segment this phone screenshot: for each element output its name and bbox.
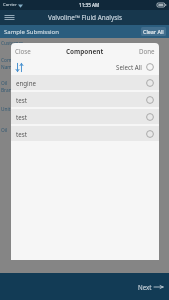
staticText: test — [16, 96, 27, 104]
staticText: Select All — [116, 63, 142, 71]
button[interactable]: Clear All — [141, 27, 166, 36]
staticText: test — [16, 130, 27, 138]
staticText: test — [16, 113, 27, 121]
staticText: Valvoline™ Fluid Analysis — [48, 13, 122, 22]
button[interactable]: Close — [11, 44, 35, 58]
button[interactable]: Sort list — [13, 61, 26, 74]
button[interactable]: test — [11, 92, 159, 107]
staticText: Done — [139, 47, 155, 55]
staticText: Carrier — [3, 2, 17, 8]
button[interactable]: Done — [135, 44, 159, 58]
button[interactable]: Next — [136, 281, 165, 293]
button[interactable]: engine — [11, 75, 159, 90]
staticText: Next — [138, 283, 152, 291]
staticText: Sample Submission — [4, 28, 59, 36]
staticText: engine — [16, 79, 37, 87]
staticText: Oil — [1, 80, 8, 87]
button[interactable]: Open navigation menu — [3, 11, 16, 24]
staticText: Customer — [1, 40, 24, 47]
staticText: 11:35 AM — [79, 2, 100, 8]
button[interactable]: test — [11, 126, 159, 141]
button[interactable]: test — [11, 109, 159, 124]
staticText: Clear All — [143, 28, 164, 35]
staticText: Unit — [1, 106, 11, 113]
staticText: Name — [1, 64, 15, 71]
staticText: Close — [15, 47, 31, 55]
staticText: Component — [66, 47, 104, 56]
staticText: Brand — [1, 87, 15, 94]
staticText: Component — [1, 57, 28, 64]
staticText: Oil — [1, 127, 8, 134]
button[interactable]: Select All — [116, 63, 154, 71]
